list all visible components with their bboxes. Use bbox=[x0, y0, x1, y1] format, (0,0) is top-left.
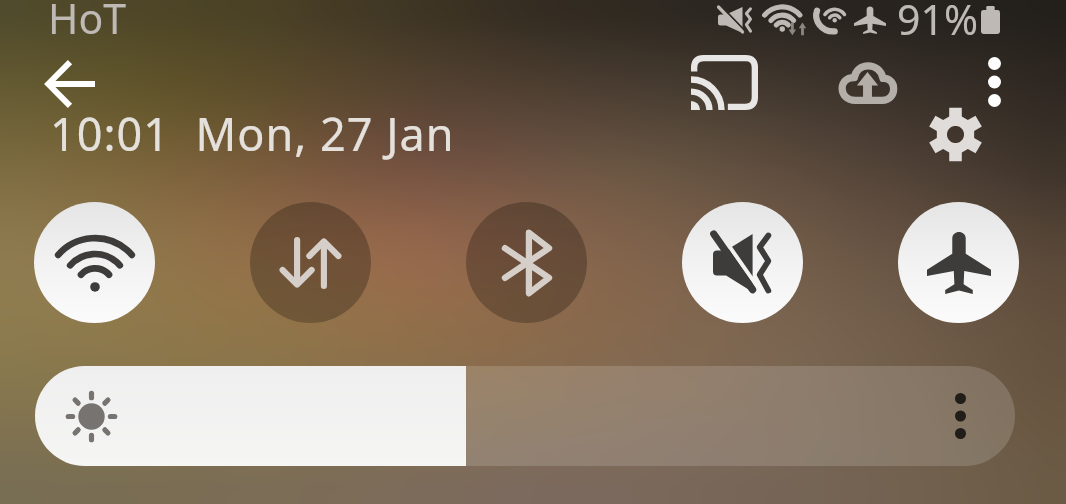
staticText: 91% bbox=[897, 0, 978, 47]
button[interactable]: Cast screen bbox=[682, 46, 767, 120]
button[interactable]: Brightness bbox=[35, 366, 1015, 466]
staticText: HoT bbox=[48, 0, 126, 46]
staticText: 10:01 Mon, 27 Jan bbox=[50, 103, 455, 164]
button[interactable]: Quick setting bbox=[250, 202, 371, 323]
button[interactable]: Quick setting bbox=[682, 202, 803, 323]
button[interactable]: Back bbox=[37, 51, 103, 117]
button[interactable]: More options bbox=[962, 50, 1026, 114]
button[interactable]: Upload to cloud bbox=[829, 44, 905, 120]
button[interactable]: Quick setting bbox=[466, 202, 587, 323]
button[interactable]: Quick setting bbox=[34, 202, 155, 323]
button[interactable]: Settings bbox=[921, 100, 989, 168]
button[interactable]: Quick setting bbox=[898, 202, 1019, 323]
